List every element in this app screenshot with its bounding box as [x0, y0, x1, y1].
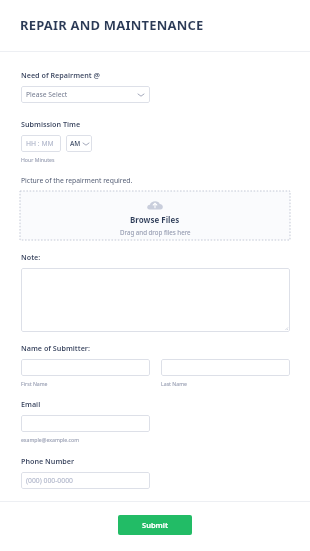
staticText: example@example.com — [21, 436, 80, 443]
staticText: Browse Files — [130, 214, 180, 225]
button[interactable]: AM — [66, 135, 92, 152]
staticText: Hour Minutes — [21, 156, 55, 163]
button[interactable]: Last name — [161, 359, 290, 376]
staticText: HH : MM — [26, 139, 54, 148]
button[interactable]: Phone number — [21, 472, 150, 489]
staticText: Please Select — [26, 90, 68, 99]
staticText: Submit — [142, 520, 168, 530]
button[interactable]: Browse files to upload — [20, 191, 290, 240]
button[interactable]: Email — [21, 415, 150, 432]
staticText: (000) 000-0000 — [26, 476, 73, 485]
button[interactable]: Please Select — [21, 86, 150, 103]
button[interactable]: Submit — [118, 515, 192, 535]
staticText: Last Name — [161, 380, 187, 387]
staticText: Drag and drop files here — [120, 228, 191, 236]
staticText: REPAIR AND MAINTENANCE — [20, 16, 204, 34]
staticText: Need of Repairment @ — [21, 70, 101, 80]
staticText: Name of Submitter: — [21, 343, 90, 353]
staticText: Email — [21, 399, 41, 409]
staticText: Note: — [21, 252, 41, 262]
staticText: Picture of the repairment required. — [21, 176, 133, 185]
staticText: Submission Time — [21, 119, 81, 129]
button[interactable]: First name — [21, 359, 150, 376]
staticText: First Name — [21, 380, 48, 387]
staticText: AM — [70, 139, 81, 148]
button[interactable]: Note — [21, 268, 290, 332]
staticText: Phone Number — [21, 456, 75, 466]
button[interactable]: Hour and minutes — [21, 135, 61, 152]
